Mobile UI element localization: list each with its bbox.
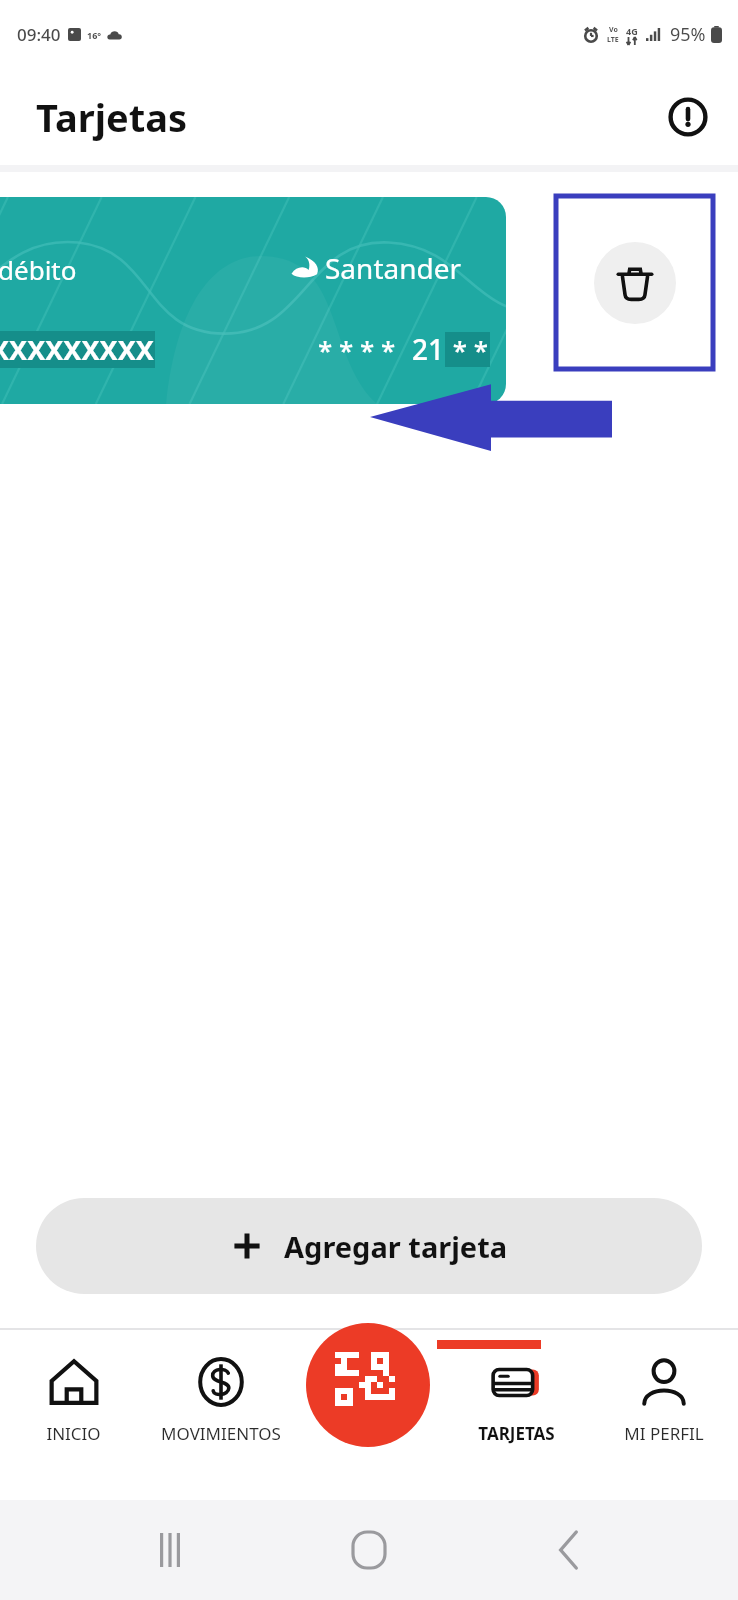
staticText: * * bbox=[446, 332, 489, 367]
button[interactable]: Recientes bbox=[140, 1520, 200, 1580]
button[interactable]: Escanear QR bbox=[306, 1323, 430, 1447]
staticText: Santander bbox=[325, 249, 462, 287]
staticText: Agregar tarjeta bbox=[284, 1227, 508, 1266]
button[interactable]: Agregar tarjeta bbox=[36, 1198, 702, 1294]
staticText: LTE bbox=[607, 35, 619, 45]
button[interactable]: Eliminar tarjeta bbox=[594, 242, 676, 324]
staticText: Tarjetas bbox=[36, 91, 187, 143]
staticText: MI PERFIL bbox=[624, 1422, 704, 1445]
button[interactable]: Inicio bbox=[339, 1520, 399, 1580]
staticText: INICIO bbox=[46, 1422, 101, 1445]
staticText: 16° bbox=[87, 29, 102, 41]
staticText: 4G bbox=[626, 25, 638, 37]
button[interactable]: MI PERFIL bbox=[590, 1328, 738, 1445]
staticText: 21 bbox=[412, 330, 445, 368]
staticText: MOVIMIENTOS bbox=[161, 1422, 281, 1445]
button[interactable]: débito bbox=[0, 197, 506, 404]
button[interactable]: Información bbox=[664, 93, 712, 141]
staticText: débito bbox=[0, 252, 77, 287]
staticText: TARJETAS bbox=[478, 1422, 555, 1445]
staticText: XXXXXXXXX bbox=[0, 331, 154, 368]
staticText: Vo bbox=[609, 25, 618, 35]
staticText: 09:40 bbox=[17, 23, 61, 46]
button[interactable]: Atrás bbox=[539, 1520, 599, 1580]
staticText: 95% bbox=[670, 22, 706, 47]
staticText: * * * * bbox=[318, 332, 396, 367]
button[interactable]: MOVIMIENTOS bbox=[147, 1328, 294, 1445]
button[interactable]: TARJETAS bbox=[442, 1328, 590, 1445]
button[interactable]: INICIO bbox=[0, 1328, 147, 1445]
